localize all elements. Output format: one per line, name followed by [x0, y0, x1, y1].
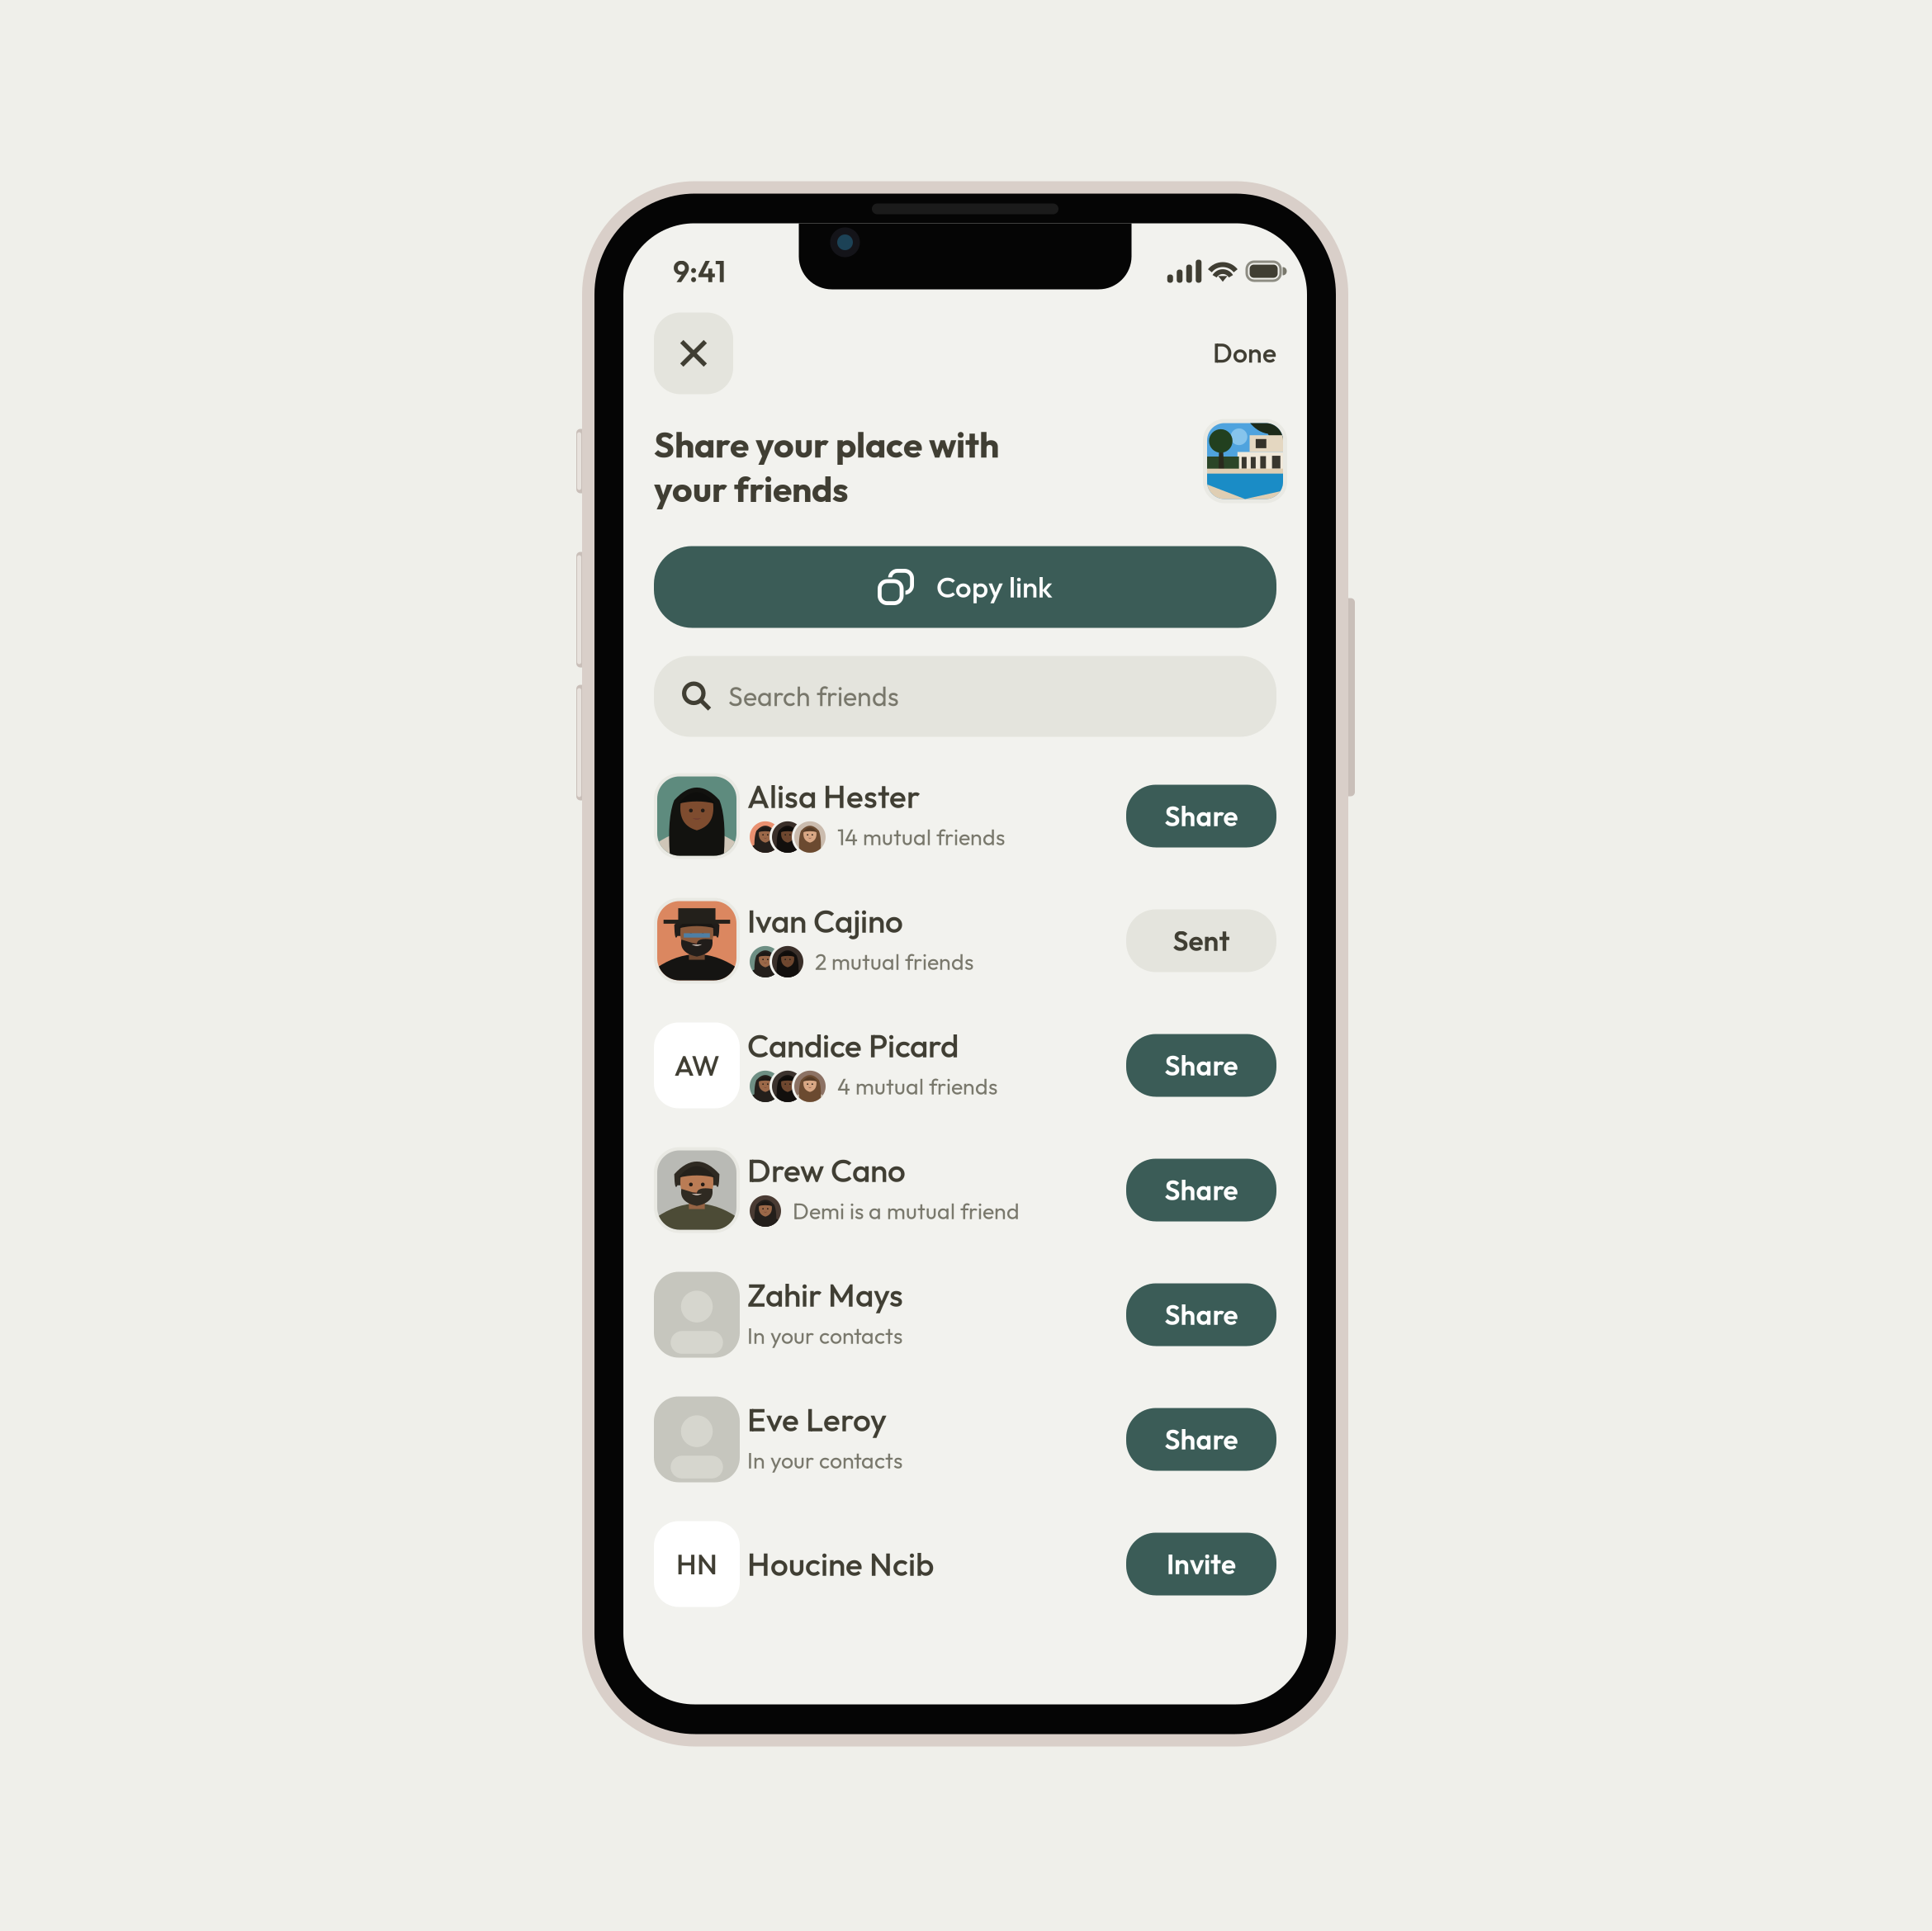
staticText: Houcine Ncib	[747, 1544, 934, 1584]
staticText: In your contacts	[747, 1446, 902, 1474]
button[interactable]: Done	[1186, 324, 1276, 382]
staticText: Done	[1213, 336, 1276, 370]
button[interactable]: Share	[1126, 1034, 1276, 1097]
button[interactable]: Sent	[1126, 909, 1276, 972]
staticText: Sent	[1173, 923, 1230, 958]
staticText: Candice Picard	[747, 1025, 959, 1066]
staticText: Eve Leroy	[747, 1399, 887, 1440]
button[interactable]: Share	[1126, 1408, 1276, 1471]
staticText: Share	[1165, 799, 1238, 833]
staticText: 4 mutual friends	[837, 1072, 997, 1100]
button[interactable]: Share	[1126, 785, 1276, 847]
staticText: In your contacts	[747, 1322, 902, 1350]
staticText: Invite	[1167, 1547, 1236, 1581]
button[interactable]: Search friends	[654, 656, 1276, 737]
staticText: Copy link	[936, 569, 1053, 605]
button[interactable]: Close	[654, 312, 733, 394]
staticText: AW	[674, 1047, 720, 1083]
staticText: Alisa Hester	[747, 776, 920, 816]
staticText: Demi is a mutual friend	[793, 1197, 1020, 1225]
staticText: 9:41	[673, 252, 726, 290]
staticText: 2 mutual friends	[815, 948, 973, 976]
button[interactable]: Invite	[1126, 1533, 1276, 1595]
staticText: Search friends	[728, 680, 899, 713]
button[interactable]: Copy link	[654, 546, 1276, 628]
button[interactable]: Share	[1126, 1283, 1276, 1346]
staticText: Share	[1165, 1422, 1238, 1457]
staticText: Share	[1165, 1173, 1238, 1207]
staticText: HN	[676, 1546, 717, 1582]
staticText: Share	[1165, 1048, 1238, 1083]
staticText: Zahir Mays	[747, 1275, 903, 1315]
staticText: 14 mutual friends	[837, 823, 1005, 851]
staticText: Drew Cano	[747, 1150, 906, 1190]
button[interactable]: Share	[1126, 1159, 1276, 1221]
staticText: Share	[1165, 1297, 1238, 1332]
staticText: Share your place with your friends	[654, 422, 999, 511]
staticText: Ivan Cajino	[747, 901, 903, 941]
